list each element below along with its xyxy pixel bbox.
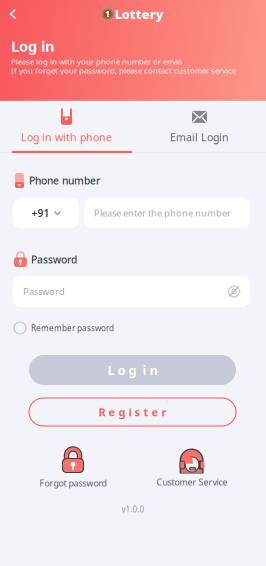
staticText: Log in	[11, 36, 55, 56]
staticText: Customer Service	[156, 476, 227, 488]
staticText: Please enter the phone number	[94, 207, 231, 219]
staticText: +91	[31, 206, 49, 220]
staticText: Please log in with your phone number or …	[11, 56, 182, 67]
button[interactable]: Back	[0, 2, 26, 26]
button[interactable]: Customer Service	[137, 448, 247, 488]
button[interactable]: Email Login	[133, 101, 266, 153]
staticText: Remember password	[31, 322, 114, 334]
staticText: Log in with phone	[21, 130, 112, 144]
button[interactable]: +91	[13, 198, 79, 228]
staticText: Forgot password	[39, 477, 106, 489]
staticText: 1	[105, 9, 110, 19]
staticText: If you forget your password, please cont…	[11, 65, 236, 76]
button[interactable]: Remember password	[0, 321, 266, 335]
staticText: Password	[31, 252, 77, 266]
button[interactable]: R e g i s t e r	[29, 398, 236, 426]
staticText: Password	[23, 285, 65, 298]
button[interactable]: Log in with phone	[0, 101, 133, 153]
staticText: Phone number	[29, 173, 100, 187]
button[interactable]: Forgot password	[18, 449, 128, 489]
staticText: Email Login	[170, 130, 229, 144]
staticText: Lottery	[115, 5, 164, 23]
button[interactable]: Show password	[223, 279, 245, 303]
staticText: v1.0.0	[121, 504, 144, 515]
staticText: R e g i s t e r	[98, 404, 166, 420]
staticText: L o g i n	[107, 361, 157, 379]
button[interactable]: L o g i n	[29, 355, 236, 385]
